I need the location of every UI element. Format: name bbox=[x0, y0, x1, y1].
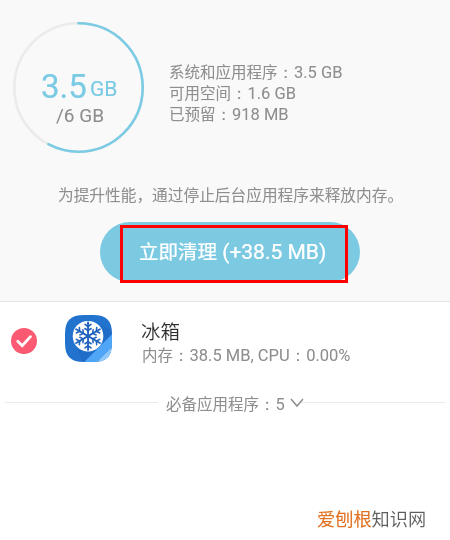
staticText: 3.5 bbox=[41, 67, 87, 106]
staticText: 已预留：918 MB bbox=[169, 102, 289, 125]
button[interactable]: Selected bbox=[0, 302, 450, 386]
staticText: 必备应用程序：5 bbox=[166, 392, 285, 412]
staticText: 内存：38.5 MB, CPU：0.00% bbox=[142, 343, 351, 366]
staticText: 系统和应用程序：3.5 GB bbox=[169, 60, 343, 83]
staticText: 可用空间：1.6 GB bbox=[169, 81, 297, 104]
other: Selected bbox=[11, 328, 37, 354]
staticText: 立即清理 (+38.5 MB) bbox=[139, 236, 327, 264]
button[interactable]: 立即清理 (+38.5 MB) bbox=[100, 222, 360, 282]
staticText: /6 GB bbox=[56, 104, 105, 126]
staticText: GB bbox=[90, 77, 118, 102]
staticText: 爱刨根知识网 bbox=[317, 505, 427, 531]
button[interactable]: 必备应用程序：5 bbox=[166, 392, 303, 412]
staticText: 为提升性能，通过停止后台应用程序来释放内存。 bbox=[58, 183, 404, 206]
staticText: 冰箱 bbox=[141, 316, 181, 344]
